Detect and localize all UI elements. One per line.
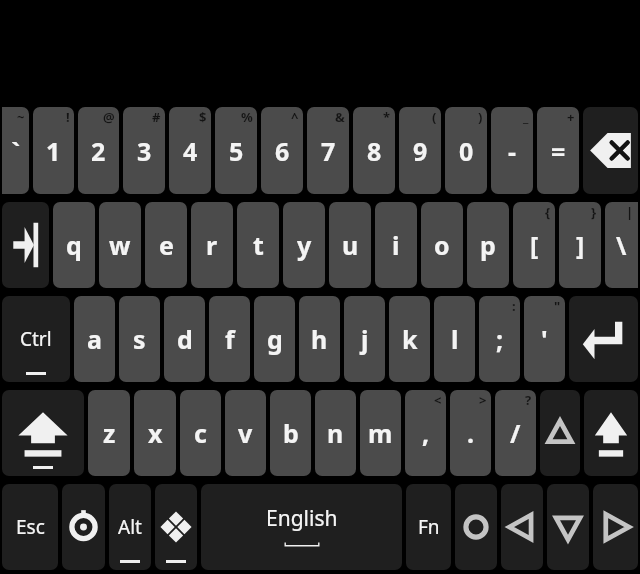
button[interactable]: y	[283, 202, 325, 288]
staticText: a	[87, 322, 102, 356]
staticText: English	[266, 504, 338, 533]
staticText: r	[206, 228, 218, 262]
staticText: {	[545, 203, 551, 221]
button[interactable]: c	[180, 390, 221, 476]
staticText: d	[177, 322, 193, 356]
button[interactable]: Backspace	[583, 107, 638, 194]
button[interactable]: r	[191, 202, 233, 288]
button[interactable]: !	[33, 107, 74, 194]
button[interactable]: w	[99, 202, 141, 288]
button[interactable]: Ctrl	[2, 296, 70, 382]
button[interactable]: n	[315, 390, 356, 476]
staticText: Fn	[418, 514, 440, 540]
button[interactable]: m	[360, 390, 401, 476]
staticText: ^	[291, 108, 299, 126]
button[interactable]: Home	[455, 484, 497, 570]
button[interactable]: i	[375, 202, 417, 288]
button[interactable]: English	[201, 484, 402, 570]
button[interactable]: &	[307, 107, 349, 194]
staticText: c	[194, 416, 207, 450]
staticText: s	[133, 322, 146, 356]
button[interactable]: }	[559, 202, 601, 288]
button[interactable]: q	[53, 202, 95, 288]
button[interactable]: Fn	[406, 484, 451, 570]
staticText: $	[199, 108, 207, 126]
button[interactable]: Shift	[584, 390, 638, 476]
other: Enter	[569, 296, 638, 382]
button[interactable]: z	[88, 390, 130, 476]
button[interactable]: Shift	[2, 390, 84, 476]
button[interactable]: t	[237, 202, 279, 288]
button[interactable]: )	[445, 107, 487, 194]
button[interactable]: o	[421, 202, 463, 288]
button[interactable]: _	[491, 107, 533, 194]
button[interactable]: Enter	[569, 296, 638, 382]
staticText: [	[530, 228, 539, 262]
button[interactable]: g	[254, 296, 295, 382]
button[interactable]: @	[78, 107, 119, 194]
staticText: )	[478, 108, 483, 126]
button[interactable]: k	[389, 296, 430, 382]
button[interactable]: ~	[2, 107, 29, 194]
staticText: _	[523, 108, 529, 126]
button[interactable]: Alt	[109, 484, 151, 570]
button[interactable]: v	[225, 390, 266, 476]
button[interactable]: Esc	[2, 484, 58, 570]
button[interactable]: s	[119, 296, 160, 382]
button[interactable]: {	[513, 202, 555, 288]
button[interactable]: p	[467, 202, 509, 288]
staticText: 4	[183, 134, 198, 168]
staticText: p	[480, 228, 496, 262]
button[interactable]: Cursor left	[501, 484, 543, 570]
button[interactable]: Cursor up	[540, 390, 580, 476]
button[interactable]: h	[299, 296, 340, 382]
staticText: ,	[422, 416, 430, 450]
button[interactable]: e	[145, 202, 187, 288]
button[interactable]: Move cursor	[155, 484, 197, 570]
staticText: :	[512, 297, 516, 315]
button[interactable]: *	[353, 107, 395, 194]
staticText: 5	[229, 134, 244, 168]
button[interactable]: Cursor down	[547, 484, 589, 570]
button[interactable]: ^	[261, 107, 303, 194]
button[interactable]: "	[524, 296, 565, 382]
staticText: u	[342, 228, 359, 262]
button[interactable]: #	[123, 107, 165, 194]
button[interactable]: |	[605, 202, 638, 288]
staticText: b	[283, 416, 299, 450]
staticText: -	[508, 134, 517, 168]
staticText: 7	[321, 134, 336, 168]
button[interactable]: l	[434, 296, 475, 382]
staticText: h	[311, 322, 328, 356]
button[interactable]: f	[209, 296, 250, 382]
staticText: ?	[525, 391, 532, 409]
button[interactable]: >	[450, 390, 491, 476]
staticText: +	[567, 108, 575, 126]
button[interactable]: %	[215, 107, 257, 194]
other: Cursor left	[501, 484, 543, 570]
staticText: e	[159, 228, 174, 262]
staticText: f	[225, 322, 235, 356]
button[interactable]: d	[164, 296, 205, 382]
button[interactable]: x	[134, 390, 176, 476]
staticText: ]	[576, 228, 585, 262]
button[interactable]: Cursor right	[593, 484, 638, 570]
button[interactable]: (	[399, 107, 441, 194]
button[interactable]: :	[479, 296, 520, 382]
button[interactable]: a	[74, 296, 115, 382]
button[interactable]: <	[405, 390, 446, 476]
button[interactable]: b	[270, 390, 311, 476]
button[interactable]: Tab	[2, 202, 49, 288]
staticText: 0	[459, 134, 474, 168]
staticText: 3	[137, 134, 152, 168]
button[interactable]: +	[537, 107, 579, 194]
button[interactable]: Settings	[62, 484, 105, 570]
button[interactable]: $	[169, 107, 211, 194]
staticText: \	[616, 228, 627, 262]
button[interactable]: ?	[495, 390, 536, 476]
staticText: .	[467, 416, 475, 450]
button[interactable]: j	[344, 296, 385, 382]
staticText: `	[11, 134, 21, 168]
button[interactable]: u	[329, 202, 371, 288]
staticText: #	[152, 108, 161, 126]
